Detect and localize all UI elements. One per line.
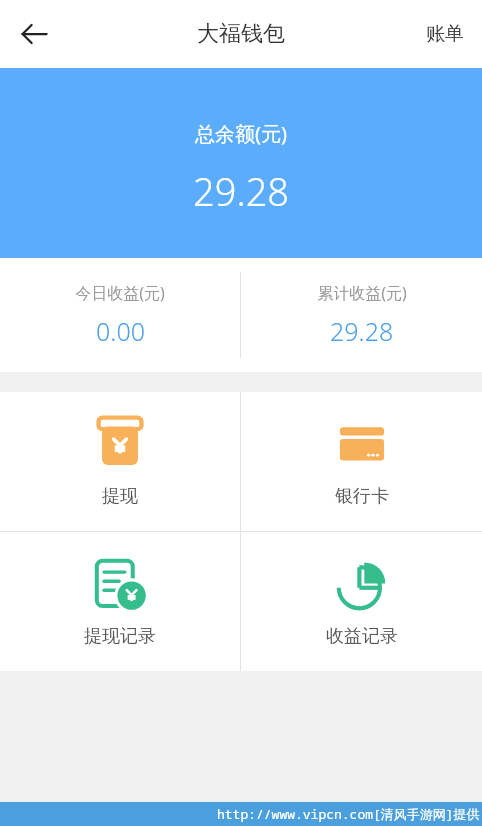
button[interactable]: 提现 (0, 392, 240, 531)
button[interactable]: 累计收益(元) (241, 258, 482, 372)
staticText: 账单 (426, 22, 464, 46)
button[interactable]: 今日收益(元) (0, 258, 240, 372)
staticText: 29.28 (330, 314, 394, 348)
staticText: 提现记录 (84, 625, 156, 648)
button[interactable]: Back (0, 0, 68, 68)
button[interactable]: 银行卡 (241, 392, 482, 531)
staticText: 0.00 (96, 314, 145, 348)
staticText: 29.28 (193, 165, 290, 217)
staticText: http://www.vipcn.com[清风手游网]提供 (217, 805, 480, 823)
staticText: 累计收益(元) (317, 282, 407, 304)
staticText: 银行卡 (335, 485, 389, 508)
button[interactable]: 账单 (408, 0, 482, 68)
staticText: 今日收益(元) (75, 282, 165, 304)
staticText: 大福钱包 (197, 20, 285, 48)
button[interactable]: 提现记录 (0, 532, 240, 671)
staticText: 收益记录 (326, 625, 398, 648)
button[interactable]: 收益记录 (241, 532, 482, 671)
staticText: 提现 (102, 485, 138, 508)
staticText: 总余额(元) (195, 120, 287, 147)
